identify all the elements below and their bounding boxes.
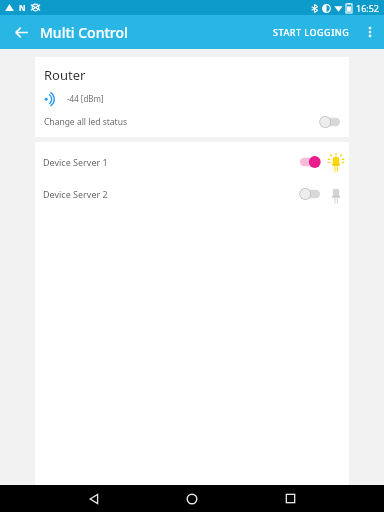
- staticText: Device Server 2: [43, 188, 108, 200]
- staticText: START LOGGING: [273, 26, 350, 38]
- button[interactable]: More options: [356, 18, 384, 46]
- button[interactable]: Change all led status: [36, 114, 348, 130]
- button[interactable]: Home: [177, 485, 207, 512]
- button[interactable]: Recents: [275, 485, 305, 512]
- button[interactable]: Device Server 2: [35, 182, 349, 206]
- button[interactable]: Back: [8, 19, 34, 45]
- staticText: -44 [dBm]: [67, 93, 104, 104]
- button[interactable]: Device Server 1: [35, 150, 349, 174]
- staticText: Multi Control: [40, 23, 128, 42]
- button[interactable]: Toggle off: [298, 186, 322, 202]
- staticText: 16:52: [356, 2, 380, 14]
- button[interactable]: Toggle on: [298, 154, 322, 170]
- button[interactable]: START LOGGING: [267, 20, 356, 44]
- staticText: Router: [44, 66, 86, 84]
- staticText: N: [19, 2, 26, 13]
- staticText: Device Server 1: [43, 156, 108, 168]
- staticText: Change all led status: [44, 116, 127, 128]
- button[interactable]: Toggle off: [318, 114, 342, 130]
- button[interactable]: Back: [79, 485, 109, 512]
